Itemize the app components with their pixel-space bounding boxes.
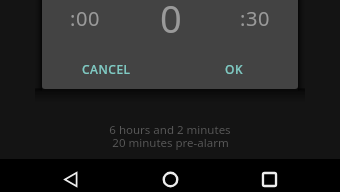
staticText: CANCEL: [82, 61, 131, 77]
staticText: :30: [240, 5, 271, 32]
button[interactable]: Home: [147, 166, 193, 192]
staticText: OK: [225, 61, 243, 77]
staticText: 6 hours and 2 minutes: [109, 122, 231, 138]
staticText: 20 minutes pre-alarm: [112, 135, 229, 151]
button[interactable]: :30: [213, 0, 298, 77]
button[interactable]: CANCEL: [42, 57, 170, 81]
staticText: :00: [70, 5, 101, 32]
staticText: 0: [160, 0, 182, 44]
button[interactable]: OK: [170, 57, 298, 81]
button[interactable]: Recent apps: [246, 166, 292, 192]
button[interactable]: Back: [48, 166, 94, 192]
button[interactable]: :00: [42, 0, 128, 77]
button[interactable]: 0: [128, 0, 213, 77]
